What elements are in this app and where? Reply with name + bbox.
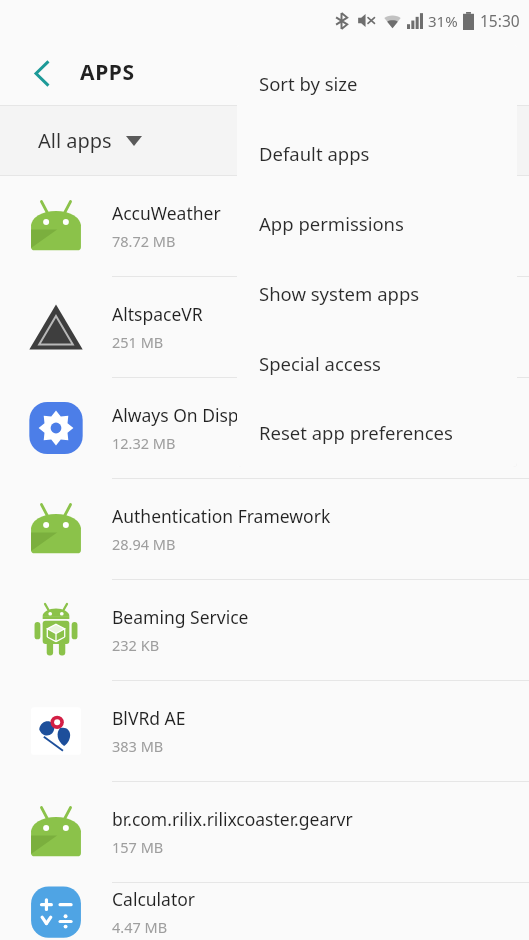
staticText: Calculator [112, 887, 196, 911]
staticText: 251 MB [112, 332, 164, 352]
button[interactable]: All apps [0, 106, 529, 175]
staticText: 232 KB [112, 635, 160, 655]
staticText: br.com.rilix.rilixcoaster.gearvr [112, 807, 353, 831]
staticText: Beaming Service [112, 605, 249, 629]
button[interactable]: Calculator [0, 883, 529, 940]
staticText: All apps [38, 127, 112, 154]
staticText: Special access [259, 351, 381, 376]
staticText: AltspaceVR [112, 302, 203, 326]
button[interactable]: Default apps [237, 118, 517, 188]
staticText: Default apps [259, 141, 370, 166]
staticText: Always On Display [112, 403, 262, 427]
button[interactable]: br.com.rilix.rilixcoaster.gearvr [0, 782, 529, 882]
button[interactable]: Special access [237, 328, 517, 398]
staticText: BlVRd AE [112, 706, 186, 730]
staticText: App permissions [259, 211, 404, 236]
button[interactable]: Show system apps [237, 258, 517, 328]
staticText: Sort by size [259, 71, 358, 96]
staticText: Show system apps [259, 281, 420, 306]
staticText: 28.94 MB [112, 534, 176, 554]
button[interactable]: App permissions [237, 188, 517, 258]
button[interactable]: Reset app preferences [237, 398, 517, 467]
staticText: 12.32 MB [112, 433, 176, 453]
staticText: AccuWeather [112, 201, 221, 225]
button[interactable]: Navigate up [19, 50, 65, 96]
button[interactable]: AccuWeather [0, 176, 529, 276]
button[interactable]: BlVRd AE [0, 681, 529, 781]
staticText: Authentication Framework [112, 504, 331, 528]
staticText: Reset app preferences [259, 420, 453, 445]
button[interactable]: AltspaceVR [0, 277, 529, 377]
staticText: 31% [428, 11, 458, 31]
button[interactable]: Beaming Service [0, 580, 529, 680]
button[interactable]: Always On Display [0, 378, 529, 478]
staticText: APPS [80, 58, 135, 87]
button[interactable]: Authentication Framework [0, 479, 529, 579]
staticText: 15:30 [480, 10, 520, 31]
staticText: 157 MB [112, 837, 164, 857]
staticText: 4.47 MB [112, 917, 168, 937]
staticText: 383 MB [112, 736, 164, 756]
staticText: 78.72 MB [112, 231, 176, 251]
button[interactable]: Sort by size [237, 48, 517, 118]
